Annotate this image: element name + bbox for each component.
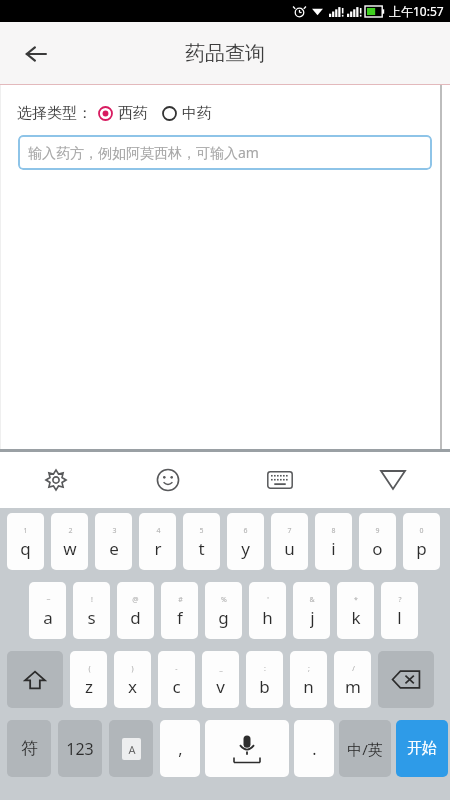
button[interactable]: Backspace [378,651,434,708]
button[interactable]: Shift [7,651,63,708]
button[interactable]: 输入药方，例如阿莫西林，可输入am [18,135,432,170]
button[interactable]: ( [70,651,107,708]
staticText: 开始 [407,739,437,758]
staticText: r [154,537,162,559]
staticText: ) [131,664,134,674]
staticText: 2 [68,526,73,536]
button[interactable]: 6 [227,513,264,570]
staticText: 123 [66,738,94,760]
button[interactable]: 中药 [162,104,212,123]
staticText: ' [267,595,269,605]
staticText: ? [398,595,402,605]
button[interactable]: - [158,651,195,708]
button[interactable]: @ [117,582,154,639]
button[interactable]: ~ [29,582,66,639]
staticText: 西药 [118,104,148,123]
staticText: 5 [199,526,204,536]
staticText: ( [88,664,91,674]
button[interactable]: 符 [7,720,51,777]
staticText: 6 [243,526,248,536]
button[interactable]: Space and voice input [205,720,289,777]
button[interactable]: Emoji [112,452,224,508]
button[interactable]: 8 [315,513,352,570]
staticText: b [259,675,270,697]
button[interactable]: % [205,582,242,639]
staticText: i [331,537,336,559]
button[interactable]: Hide keyboard [336,452,450,508]
button[interactable]: Back [14,32,58,76]
button[interactable]: ! [73,582,110,639]
staticText: m [345,675,361,697]
button[interactable]: 5 [183,513,220,570]
button[interactable]: Keyboard layout [224,452,336,508]
button[interactable]: Input language [109,720,153,777]
staticText: @ [132,595,139,605]
button[interactable]: 9 [359,513,396,570]
button[interactable]: , [160,720,200,777]
staticText: 符 [21,738,38,759]
staticText: 9 [375,526,380,536]
staticText: k [351,606,361,628]
staticText: t [198,537,205,559]
staticText: # [178,595,183,605]
button[interactable]: 7 [271,513,308,570]
staticText: n [303,675,314,697]
button[interactable]: 4 [139,513,176,570]
button[interactable]: ; [290,651,327,708]
staticText: 中/英 [347,739,383,759]
staticText: y [241,537,250,559]
staticText: w [63,537,77,559]
staticText: ; [308,664,310,674]
staticText: 选择类型： [17,104,92,123]
button[interactable]: & [293,582,330,639]
staticText: 3 [112,526,117,536]
button[interactable]: 0 [403,513,440,570]
staticText: g [218,606,229,628]
staticText: 8 [331,526,336,536]
button[interactable]: 开始 [396,720,448,777]
button[interactable]: ' [249,582,286,639]
staticText: l [397,606,402,628]
staticText: / [352,664,355,674]
staticText: q [20,537,31,559]
staticText: e [109,537,119,559]
button[interactable]: # [161,582,198,639]
staticText: 药品查询 [185,41,265,66]
button[interactable]: * [337,582,374,639]
staticText: h [262,606,273,628]
staticText: x [128,675,137,697]
staticText: 4 [156,526,161,536]
button[interactable]: ) [114,651,151,708]
staticText: : [264,664,266,674]
button[interactable]: 2 [51,513,88,570]
staticText: _ [219,664,223,674]
staticText: , [178,738,183,760]
staticText: d [130,606,141,628]
staticText: * [354,595,358,605]
staticText: ! [91,595,93,605]
button[interactable]: 3 [95,513,132,570]
staticText: 中药 [182,104,212,123]
button[interactable]: : [246,651,283,708]
staticText: 7 [287,526,292,536]
staticText: % [221,595,227,605]
button[interactable]: 123 [58,720,102,777]
staticText: c [172,675,181,697]
staticText: o [372,537,383,559]
staticText: v [216,675,225,697]
button[interactable]: ? [381,582,418,639]
staticText: z [85,675,93,697]
staticText: f [177,606,183,628]
staticText: j [310,606,315,628]
staticText: A [128,742,136,757]
staticText: 上午10:57 [389,3,444,19]
button[interactable]: . [294,720,334,777]
staticText: ~ [46,595,51,605]
button[interactable]: _ [202,651,239,708]
button[interactable]: 1 [7,513,44,570]
button[interactable]: Settings [0,452,112,508]
button[interactable]: / [334,651,371,708]
staticText: s [87,606,96,628]
button[interactable]: 中/英 [339,720,391,777]
button[interactable]: 西药 [98,104,148,123]
